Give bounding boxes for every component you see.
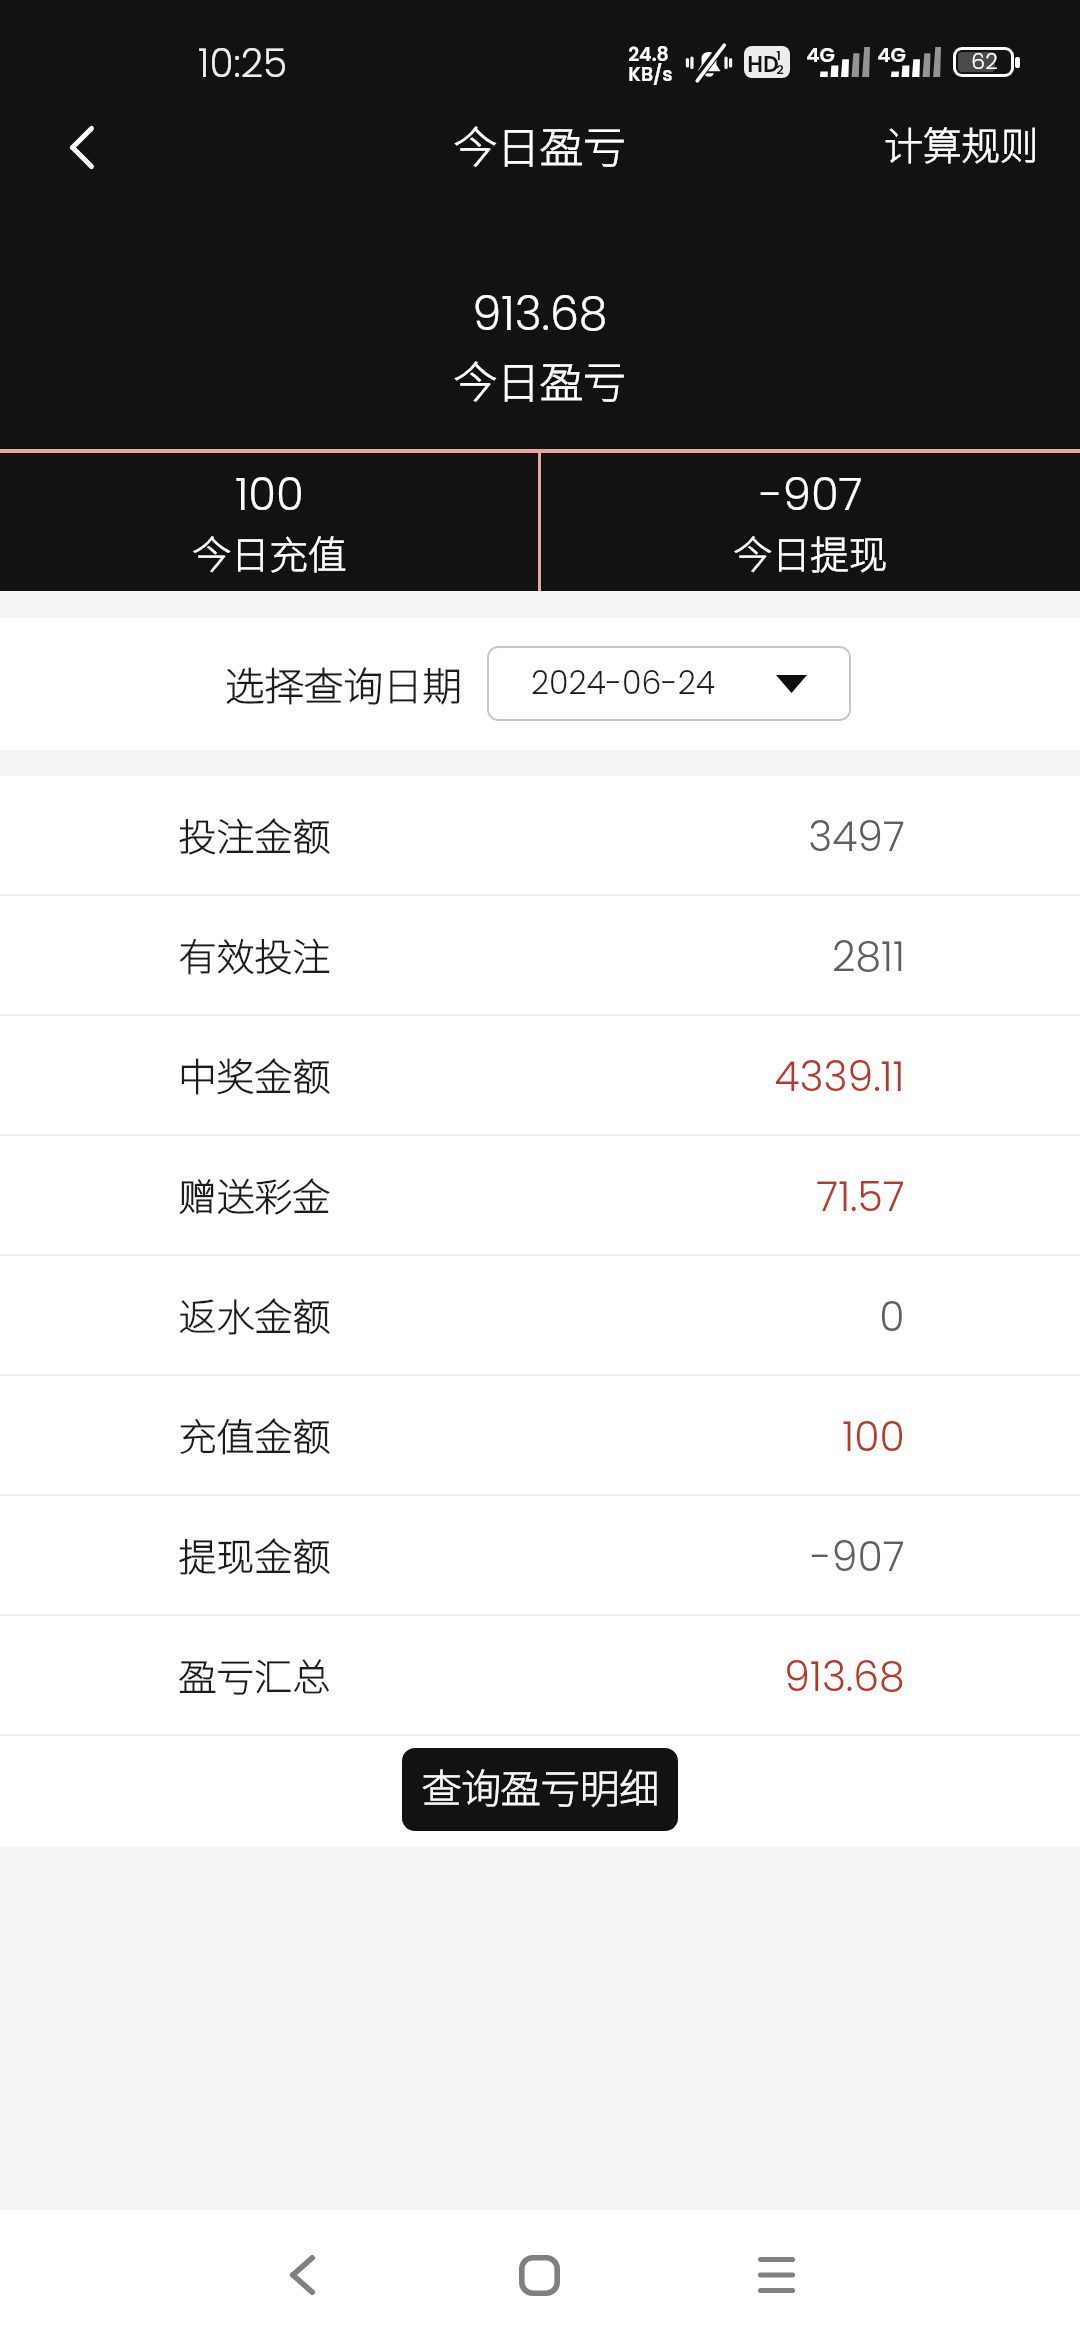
button[interactable]: Back [30, 95, 134, 199]
staticText: 2811 [832, 928, 905, 985]
staticText: 中奖金额 [178, 1047, 331, 1102]
staticText: 充值金额 [178, 1407, 331, 1462]
staticText: 0 [879, 1288, 905, 1345]
staticText: 计算规则 [884, 115, 1039, 171]
staticText: KB/s [628, 61, 673, 88]
staticText: 今日提现 [733, 524, 888, 580]
button[interactable]: 2024-06-24 [487, 646, 851, 721]
staticText: 62 [971, 46, 998, 76]
staticText: 盈亏汇总 [178, 1647, 331, 1702]
staticText: 赠送彩金 [178, 1167, 331, 1222]
staticText: 100 [842, 1408, 905, 1465]
staticText: 4G [806, 41, 835, 69]
staticText: 投注金额 [178, 807, 331, 862]
staticText: 100 [235, 463, 304, 526]
staticText: 返水金额 [178, 1287, 331, 1342]
staticText: 913.68 [784, 1648, 905, 1705]
staticText: 今日充值 [192, 524, 347, 580]
staticText: 1 [776, 46, 781, 64]
staticText: 选择查询日期 [225, 655, 462, 712]
staticText: HD [747, 49, 779, 78]
other: Silent mode [685, 42, 733, 82]
staticText: 24.8 [628, 41, 669, 68]
staticText: -907 [759, 463, 863, 526]
staticText: 913.68 [472, 282, 608, 346]
staticText: 2 [776, 60, 784, 78]
staticText: 4339.11 [774, 1048, 905, 1105]
button[interactable]: Home [484, 2210, 594, 2340]
staticText: 查询盈亏明细 [422, 1757, 659, 1814]
button[interactable]: Recent apps [721, 2210, 831, 2340]
button[interactable]: 计算规则 [884, 115, 1039, 171]
staticText: 2024-06-24 [531, 661, 715, 705]
staticText: 今日盈亏 [454, 348, 626, 410]
staticText: 10:25 [198, 36, 287, 91]
staticText: 提现金额 [178, 1527, 331, 1582]
staticText: 3497 [808, 808, 905, 865]
button[interactable]: 查询盈亏明细 [402, 1748, 678, 1831]
button[interactable]: Back [247, 2210, 357, 2340]
staticText: 4G [877, 41, 906, 69]
staticText: 今日盈亏 [454, 113, 626, 175]
staticText: -907 [810, 1528, 905, 1585]
staticText: 有效投注 [178, 927, 331, 982]
staticText: 71.57 [816, 1168, 905, 1225]
